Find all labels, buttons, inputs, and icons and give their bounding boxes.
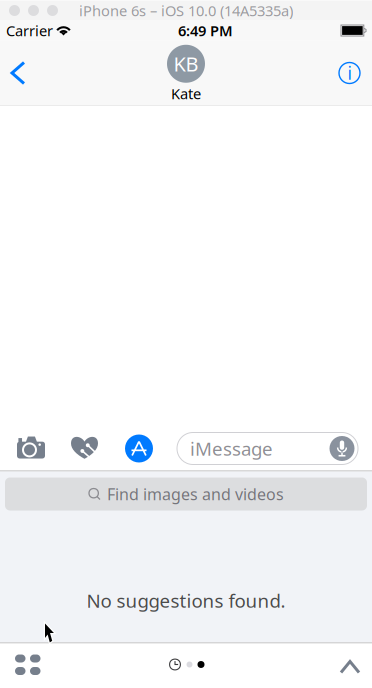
button[interactable]: Recents — [165, 654, 185, 674]
button[interactable]: Message field — [177, 432, 358, 464]
staticText: Find images and videos — [107, 483, 284, 505]
button[interactable]: App Store — [120, 429, 158, 467]
staticText: Carrier — [6, 21, 53, 40]
button[interactable]: Digital Touch — [65, 430, 104, 465]
button[interactable]: Details — [327, 48, 372, 97]
staticText: Kate — [171, 84, 201, 103]
staticText: iPhone 6s – iOS 10.0 (14A5335a) — [79, 1, 293, 20]
button[interactable]: KB — [167, 43, 205, 103]
button[interactable]: Camera — [11, 430, 51, 464]
staticText: KB — [173, 50, 198, 77]
button[interactable]: Expand — [332, 652, 368, 681]
staticText: 6:49 PM — [178, 21, 233, 40]
staticText: No suggestions found. — [86, 588, 285, 613]
button[interactable]: Find images and videos — [5, 477, 367, 510]
button[interactable]: Back — [0, 48, 36, 97]
staticText: i — [347, 61, 351, 84]
button[interactable]: Apps — [7, 646, 48, 683]
staticText: iMessage — [190, 436, 273, 461]
